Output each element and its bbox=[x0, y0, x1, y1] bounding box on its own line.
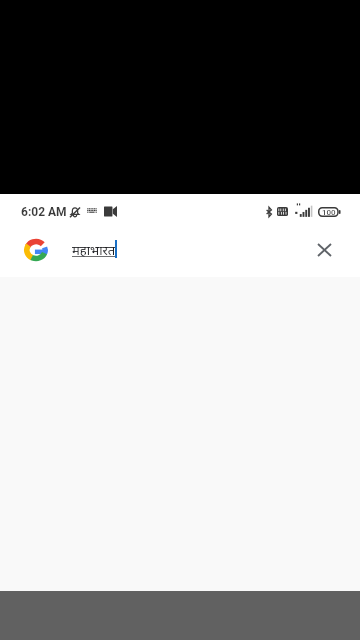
button[interactable]: Clear search bbox=[301, 227, 347, 273]
staticText: महाभारत bbox=[72, 241, 116, 259]
staticText: 6:02 AM bbox=[21, 205, 67, 219]
staticText: 100 bbox=[322, 208, 336, 217]
button[interactable]: महाभारत bbox=[71, 227, 301, 273]
button[interactable]: Google bbox=[13, 227, 59, 273]
